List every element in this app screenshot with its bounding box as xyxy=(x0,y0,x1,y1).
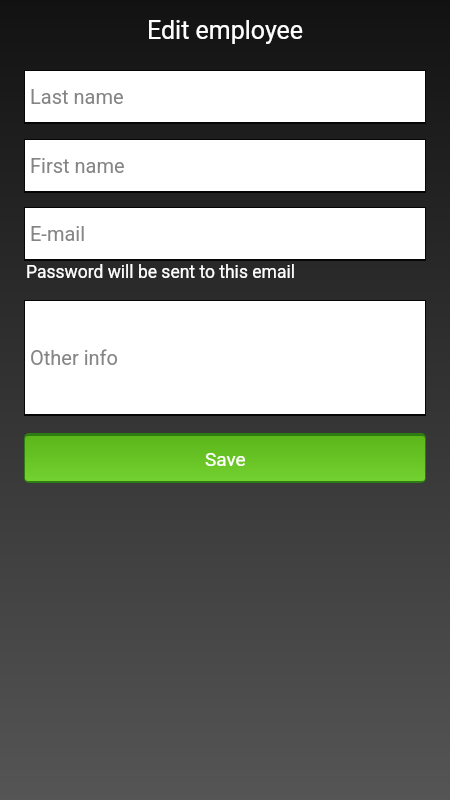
staticText: Edit employee xyxy=(147,16,304,45)
button[interactable]: Other info xyxy=(25,301,425,414)
staticText: Last name xyxy=(30,85,124,108)
button[interactable]: First name xyxy=(25,140,425,191)
staticText: Save xyxy=(205,448,246,470)
button[interactable]: Last name xyxy=(25,71,425,122)
button[interactable]: Save xyxy=(24,433,426,483)
staticText: E-mail xyxy=(30,222,86,245)
staticText: First name xyxy=(30,154,125,177)
staticText: Other info xyxy=(30,346,118,369)
button[interactable]: E-mail xyxy=(25,208,425,259)
staticText: Password will be sent to this email xyxy=(26,262,295,283)
